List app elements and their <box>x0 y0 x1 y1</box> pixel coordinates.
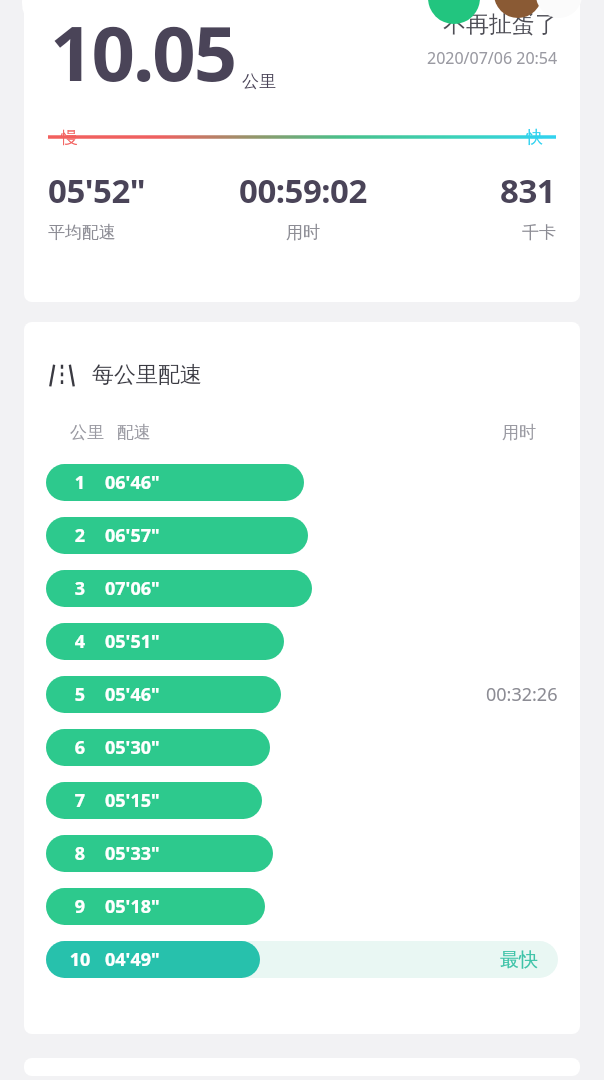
staticText: 配速 <box>117 422 151 443</box>
staticText: 07'06" <box>105 576 160 601</box>
staticText: 2020/07/06 20:54 <box>427 47 558 69</box>
staticText: 00:32:26 <box>486 682 558 707</box>
button[interactable]: Avatar <box>494 0 542 18</box>
staticText: 最快 <box>500 948 538 972</box>
staticText: 公里 <box>70 422 104 443</box>
staticText: 每公里配速 <box>92 361 202 389</box>
button[interactable]: Profile <box>22 0 80 32</box>
staticText: 05'52" <box>48 168 146 213</box>
button[interactable]: 1 <box>24 456 580 509</box>
staticText: 8 <box>63 841 97 866</box>
staticText: 05'51" <box>105 629 160 654</box>
staticText: 快 <box>526 127 543 148</box>
staticText: 用时 <box>286 222 320 243</box>
staticText: 1 <box>63 470 97 495</box>
staticText: 3 <box>63 576 97 601</box>
staticText: 831 <box>500 168 556 213</box>
staticText: 10 <box>63 947 97 972</box>
button[interactable]: 10 <box>24 933 580 986</box>
staticText: 慢 <box>61 127 78 148</box>
staticText: 公里 <box>242 71 276 92</box>
button[interactable]: 7 <box>24 774 580 827</box>
staticText: 06'46" <box>105 470 160 495</box>
staticText: 05'15" <box>105 788 160 813</box>
button[interactable]: 2 <box>24 509 580 562</box>
staticText: 7 <box>63 788 97 813</box>
staticText: 千卡 <box>522 222 556 243</box>
button[interactable]: Share <box>428 0 480 24</box>
staticText: 10.05 <box>50 0 236 104</box>
staticText: 2 <box>63 523 97 548</box>
button[interactable]: 5 <box>24 668 580 721</box>
staticText: 6 <box>63 735 97 760</box>
staticText: 5 <box>63 682 97 707</box>
staticText: 9 <box>63 894 97 919</box>
button[interactable]: 6 <box>24 721 580 774</box>
staticText: 05'30" <box>105 735 160 760</box>
staticText: 05'46" <box>105 682 160 707</box>
button[interactable]: 4 <box>24 615 580 668</box>
staticText: 00:59:02 <box>239 168 367 213</box>
staticText: 不再扯蛋了 <box>443 10 558 39</box>
staticText: 4 <box>63 629 97 654</box>
staticText: 平均配速 <box>48 222 116 243</box>
staticText: 用时 <box>502 422 536 443</box>
button[interactable]: More <box>536 0 582 18</box>
staticText: 06'57" <box>105 523 160 548</box>
button[interactable]: 3 <box>24 562 580 615</box>
staticText: 05'18" <box>105 894 160 919</box>
staticText: 05'33" <box>105 841 160 866</box>
staticText: 04'49" <box>105 947 160 972</box>
button[interactable]: 9 <box>24 880 580 933</box>
button[interactable]: 8 <box>24 827 580 880</box>
